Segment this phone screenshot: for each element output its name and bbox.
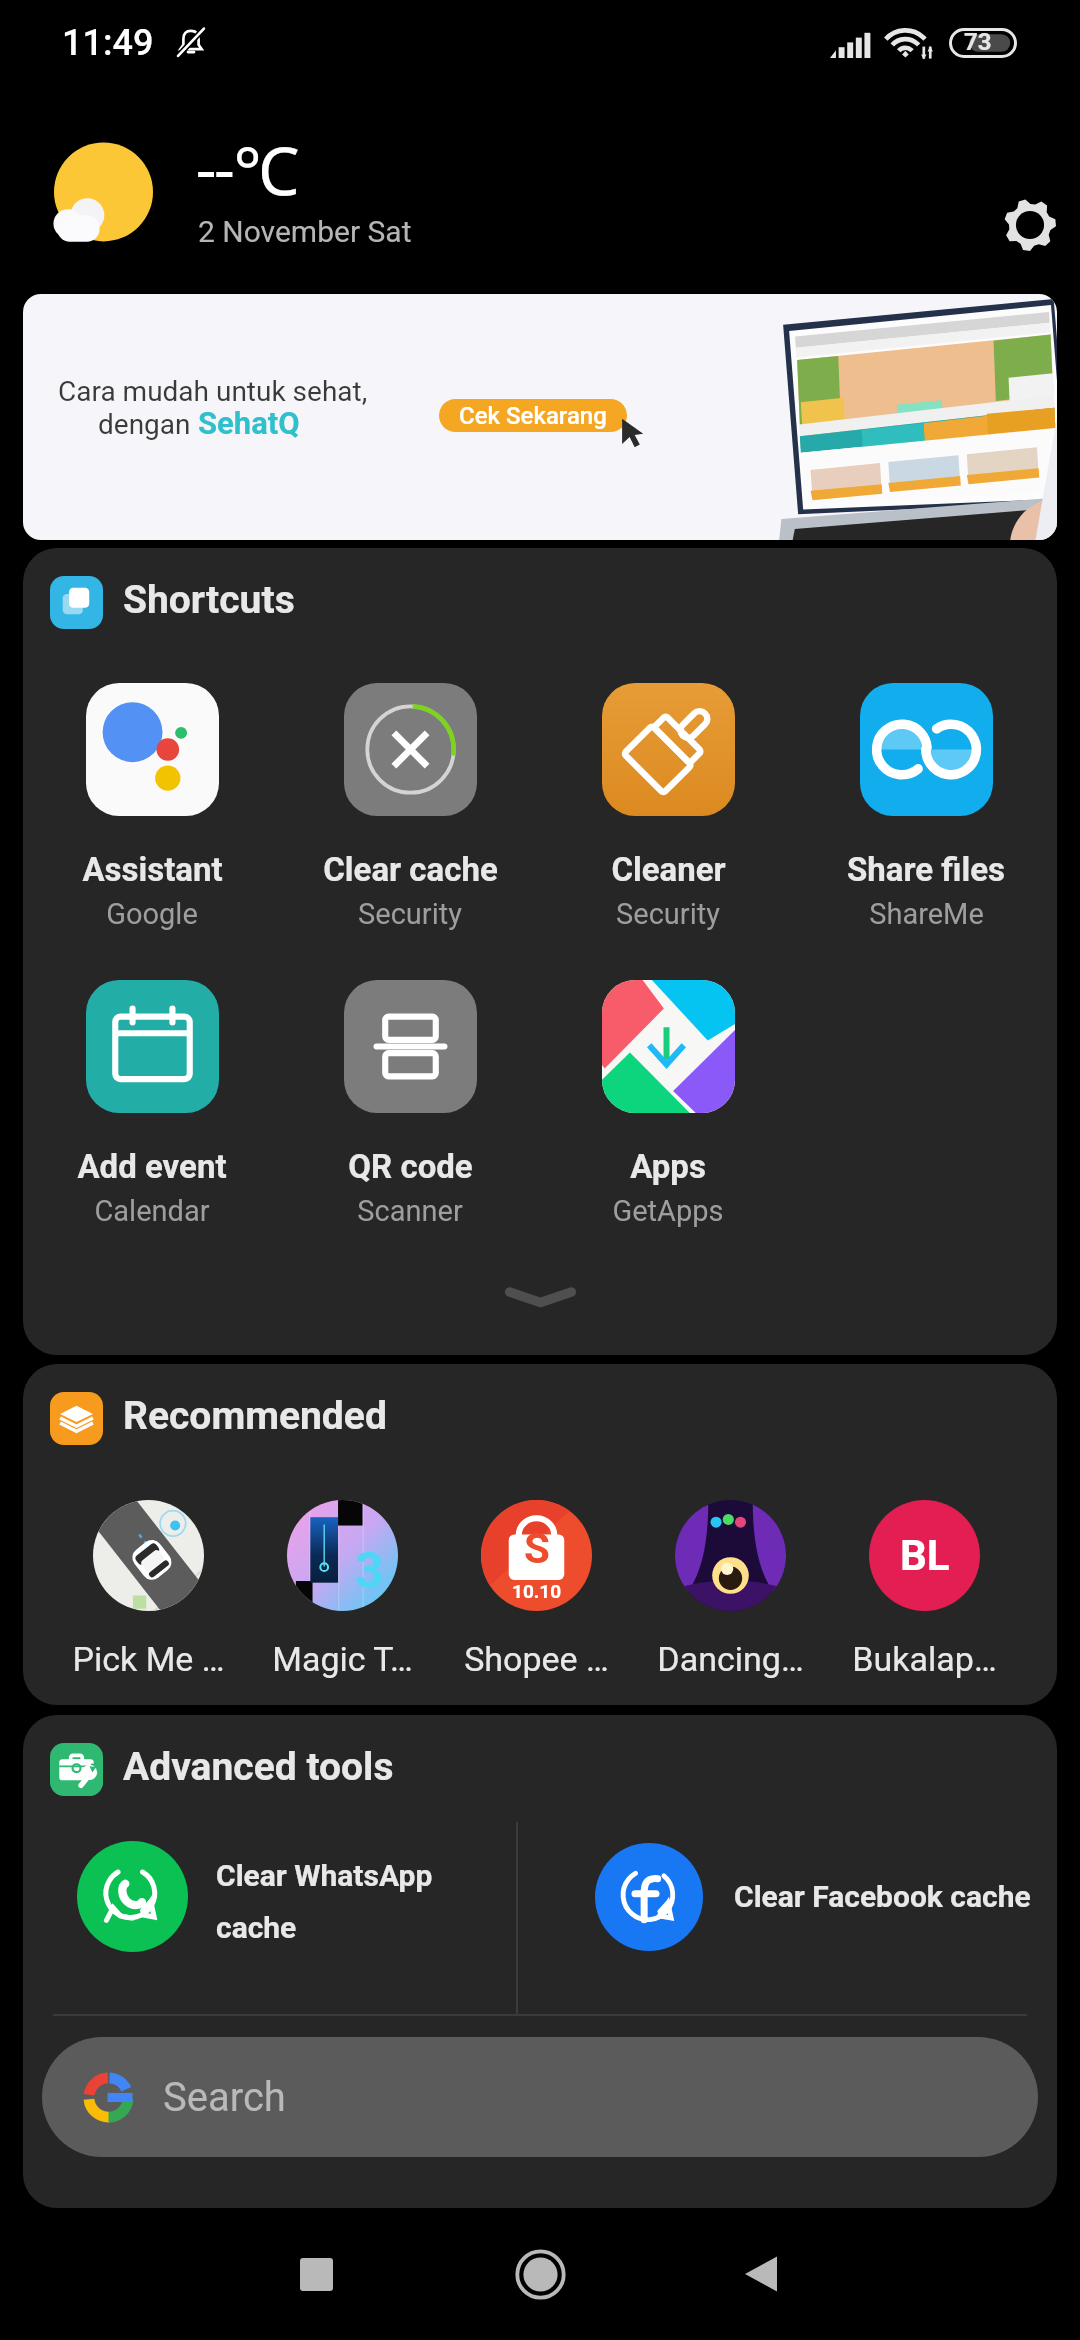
staticText: Clear WhatsApp [216, 1858, 433, 1893]
button[interactable]: Cara mudah untuk sehat, [23, 294, 1057, 540]
staticText: Search [163, 2074, 286, 2121]
button[interactable]: Recents [262, 2220, 370, 2328]
staticText: 2 November Sat [198, 214, 412, 249]
staticText: ShareMe [869, 897, 984, 931]
button[interactable]: Assistant [23, 683, 281, 931]
staticText: Advanced tools [123, 1744, 394, 1790]
button[interactable]: 3 [245, 1500, 439, 1679]
staticText: Scanner [357, 1194, 463, 1228]
button[interactable]: Share files [797, 683, 1055, 931]
staticText: Shopee … [464, 1639, 609, 1679]
button[interactable]: Home [486, 2220, 594, 2328]
staticText: Cleaner [611, 850, 726, 889]
button[interactable]: Clear Facebook cache [563, 1819, 1057, 1974]
button[interactable]: Cleaner [539, 683, 797, 931]
staticText: 11:49 [62, 22, 154, 64]
staticText: dengan [98, 408, 198, 441]
staticText: Security [358, 897, 462, 931]
button[interactable]: QR code [281, 980, 539, 1228]
button[interactable]: Back [707, 2220, 815, 2328]
button[interactable]: Dancing… [633, 1500, 827, 1679]
staticText: Apps [630, 1147, 706, 1186]
staticText: Clear cache [323, 850, 498, 889]
staticText: Share files [847, 850, 1005, 889]
staticText: Pick Me … [72, 1639, 225, 1679]
staticText: 73 [964, 28, 992, 56]
staticText: Google [106, 897, 198, 931]
staticText: Add event [77, 1147, 227, 1186]
staticText: Clear Facebook cache [734, 1879, 1031, 1914]
staticText: Bukalap… [852, 1639, 997, 1679]
staticText: Calendar [94, 1194, 210, 1228]
staticText: 3 [355, 1542, 384, 1601]
button[interactable]: Clear WhatsApp [53, 1819, 513, 1974]
button[interactable]: Apps [539, 980, 797, 1228]
staticText: SehatQ [198, 405, 300, 441]
button[interactable]: Settings [1004, 199, 1060, 255]
button[interactable]: Clear cache [281, 683, 539, 931]
staticText: QR code [348, 1147, 473, 1186]
staticText: GetApps [612, 1194, 724, 1228]
button[interactable]: BL [827, 1500, 1021, 1679]
button[interactable]: Cek Sekarang [439, 399, 627, 432]
button[interactable]: Add event [23, 980, 281, 1228]
button[interactable]: Pick Me … [51, 1500, 245, 1679]
staticText: Dancing… [657, 1639, 804, 1679]
staticText: 10.10 [512, 1580, 562, 1602]
button[interactable]: Search [42, 2037, 1038, 2157]
staticText: Assistant [82, 850, 223, 889]
staticText: Security [616, 897, 720, 931]
staticText: Magic T… [272, 1639, 413, 1679]
staticText: Cara mudah untuk sehat, [58, 375, 368, 408]
staticText: cache [216, 1910, 297, 1945]
staticText: Cek Sekarang [459, 402, 607, 430]
staticText: Shortcuts [123, 577, 295, 623]
staticText: S [524, 1524, 550, 1573]
staticText: BL [900, 1531, 950, 1580]
button[interactable]: S [439, 1500, 633, 1679]
staticText: Recommended [123, 1393, 387, 1439]
staticText: --℃ [197, 124, 300, 214]
